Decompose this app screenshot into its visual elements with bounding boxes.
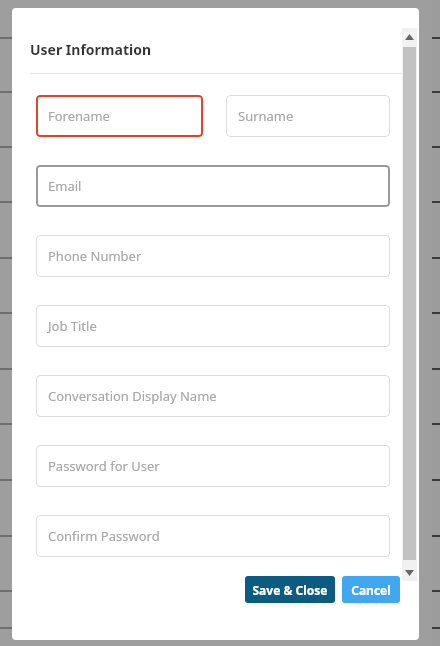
staticText: Conversation Display Name	[48, 387, 217, 405]
button[interactable]: Surname	[226, 95, 390, 137]
staticText: Surname	[238, 107, 294, 125]
staticText: Job Title	[48, 317, 97, 335]
button[interactable]: Job Title	[36, 305, 390, 347]
staticText: Phone Number	[48, 247, 142, 265]
staticText: Save & Close	[252, 582, 328, 598]
button[interactable]: Save & Close	[245, 576, 335, 603]
button[interactable]: Email	[36, 165, 390, 207]
button[interactable]: Password for User	[36, 445, 390, 487]
staticText: Email	[48, 177, 82, 195]
button[interactable]: Forename	[36, 95, 203, 137]
staticText: Confirm Password	[48, 527, 160, 545]
button[interactable]: Confirm Password	[36, 515, 390, 557]
staticText: Password for User	[48, 457, 160, 475]
button[interactable]: Conversation Display Name	[36, 375, 390, 417]
staticText: Forename	[48, 107, 110, 125]
staticText: User Information	[30, 40, 151, 59]
button[interactable]: Cancel	[342, 576, 400, 603]
button[interactable]: Phone Number	[36, 235, 390, 277]
staticText: Cancel	[351, 582, 391, 598]
button[interactable]: Scroll bar	[402, 28, 417, 581]
